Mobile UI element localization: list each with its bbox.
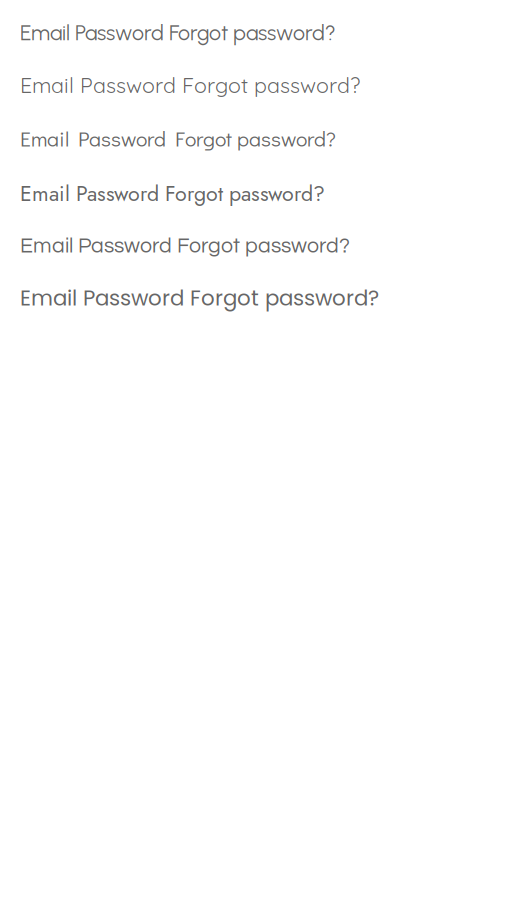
staticText: Email Password Forgot password? [20, 124, 336, 152]
staticText: Email Password Forgot password? [20, 178, 325, 209]
staticText: Email Password Forgot password? [20, 72, 360, 98]
staticText: Email Password Forgot password? [20, 20, 336, 46]
staticText: Email Password Forgot password? [20, 235, 350, 257]
staticText: Email Password Forgot password? [20, 283, 379, 313]
